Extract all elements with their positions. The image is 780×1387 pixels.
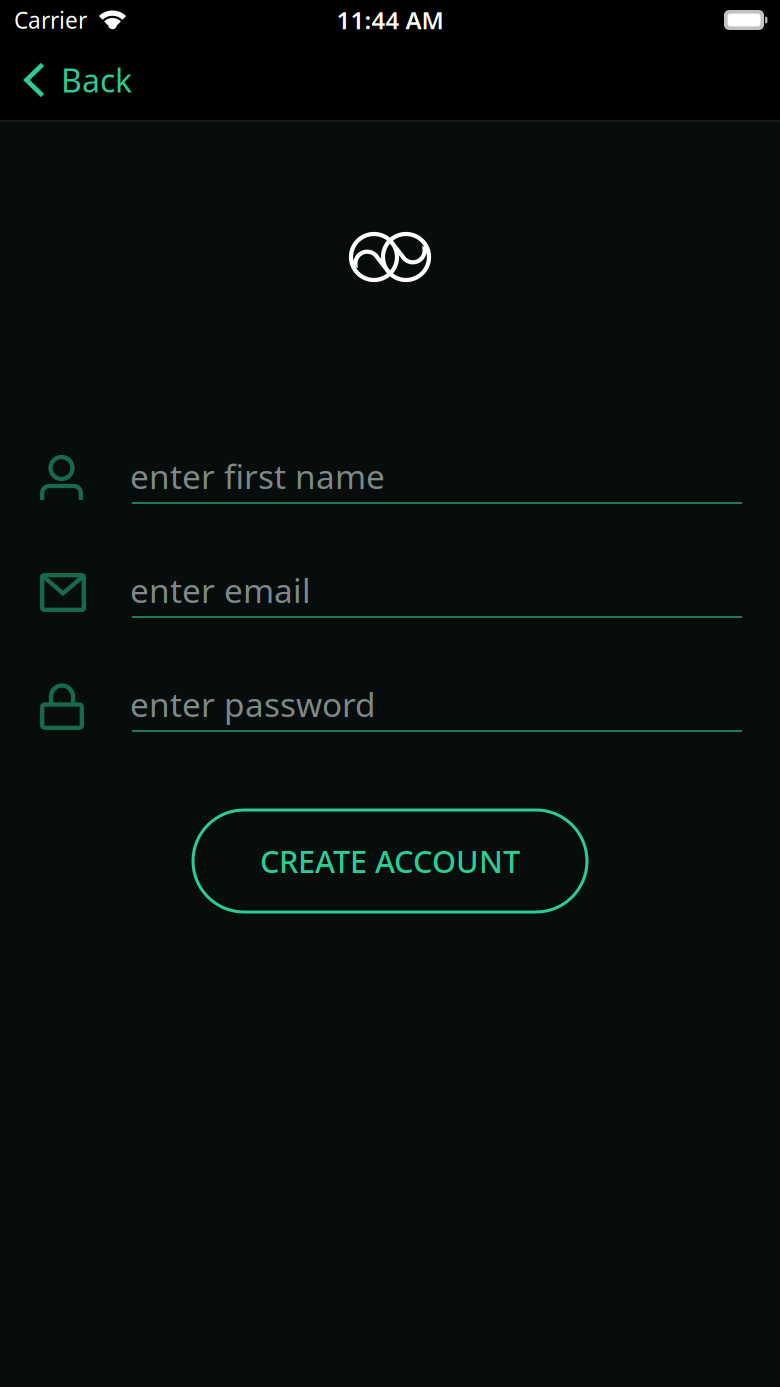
staticText: Carrier: [14, 5, 87, 35]
staticText: Back: [61, 59, 132, 101]
staticText: enter email: [130, 568, 311, 612]
staticText: 11:44 AM: [336, 4, 443, 36]
button[interactable]: CREATE ACCOUNT: [193, 810, 587, 912]
staticText: CREATE ACCOUNT: [260, 841, 520, 881]
button[interactable]: Back: [0, 46, 148, 120]
staticText: enter password: [130, 682, 376, 726]
staticText: enter first name: [130, 454, 385, 498]
